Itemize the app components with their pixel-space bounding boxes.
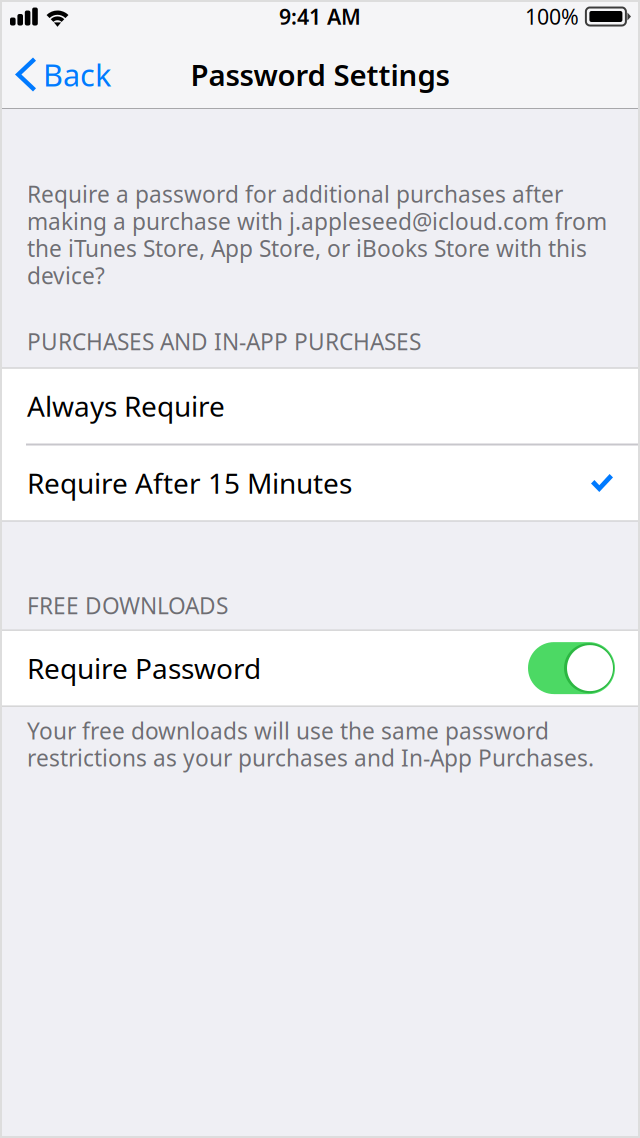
staticText: Always Require [27, 387, 225, 425]
staticText: Require Password [27, 649, 261, 687]
staticText: 100% [525, 2, 579, 31]
button[interactable]: Always Require [0, 368, 640, 443]
staticText: PURCHASES AND IN-APP PURCHASES [27, 326, 421, 356]
button[interactable]: Require Password [0, 631, 640, 706]
staticText: Require a password for additional purcha… [27, 179, 607, 290]
staticText: Back [43, 54, 111, 95]
button[interactable]: Back [0, 41, 125, 108]
staticText: 9:41 AM [279, 2, 361, 31]
staticText: Your free downloads will use the same pa… [27, 716, 594, 773]
button[interactable]: Require After 15 Minutes [0, 445, 640, 520]
staticText: FREE DOWNLOADS [27, 590, 228, 621]
staticText: Require After 15 Minutes [27, 464, 352, 502]
staticText: Password Settings [190, 55, 449, 94]
